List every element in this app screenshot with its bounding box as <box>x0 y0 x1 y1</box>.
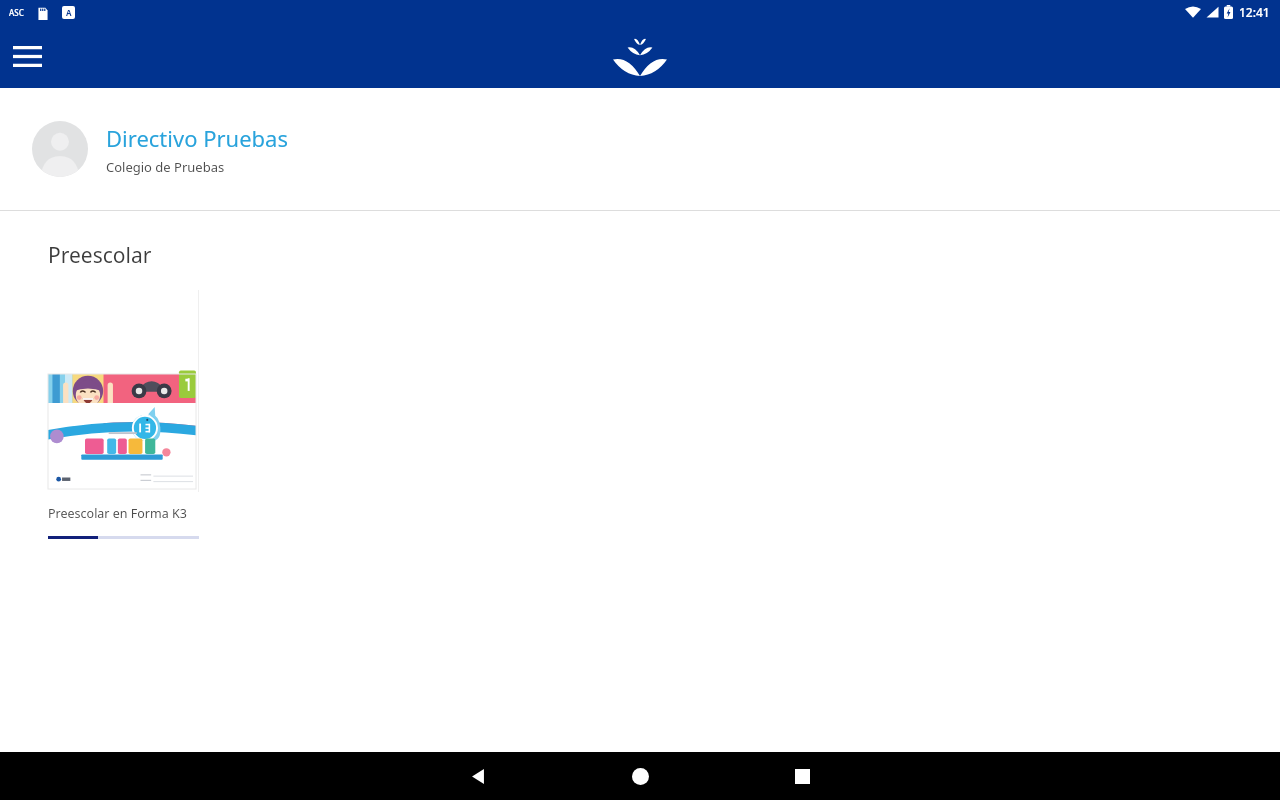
staticText: Preescolar <box>48 241 152 270</box>
staticText: Preescolar en Forma K3 <box>48 505 187 522</box>
button[interactable]: Recent apps <box>771 752 833 800</box>
button[interactable]: Menu <box>5 34 50 79</box>
button[interactable]: Preescolar en Forma K3 <box>48 290 199 539</box>
staticText: Colegio de Pruebas <box>106 158 225 176</box>
staticText: A <box>66 7 72 18</box>
button[interactable]: Back <box>447 752 509 800</box>
staticText: 12:41 <box>1239 4 1270 20</box>
staticText: Directivo Pruebas <box>106 123 288 153</box>
staticText: ASC <box>9 7 24 18</box>
button[interactable]: Directivo Pruebas <box>0 88 1280 210</box>
button[interactable]: Home <box>609 752 671 800</box>
